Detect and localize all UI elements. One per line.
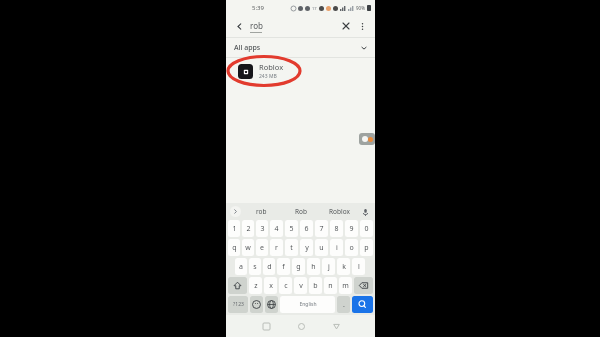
button[interactable]: h bbox=[307, 258, 320, 275]
staticText: c bbox=[284, 281, 288, 291]
button[interactable]: i bbox=[330, 239, 343, 256]
button[interactable]: j bbox=[322, 258, 335, 275]
staticText: rob bbox=[256, 207, 267, 216]
button[interactable]: 5 bbox=[285, 220, 298, 237]
button[interactable]: u bbox=[315, 239, 328, 256]
button[interactable]: y bbox=[300, 239, 313, 256]
button[interactable]: English bbox=[280, 296, 335, 313]
button[interactable]: a bbox=[235, 258, 247, 275]
button[interactable]: d bbox=[263, 258, 275, 275]
button[interactable]: r bbox=[270, 239, 283, 256]
button[interactable]: Emoji bbox=[250, 296, 263, 313]
button[interactable]: e bbox=[256, 239, 268, 256]
staticText: Roblox bbox=[329, 207, 350, 216]
button[interactable]: Voice input bbox=[359, 206, 371, 218]
staticText: f bbox=[282, 262, 285, 272]
button[interactable]: k bbox=[337, 258, 350, 275]
button[interactable]: rob bbox=[247, 15, 338, 37]
staticText: v bbox=[299, 281, 303, 291]
button[interactable]: v bbox=[294, 277, 307, 294]
button[interactable]: Recents bbox=[248, 315, 284, 337]
button[interactable]: m bbox=[339, 277, 352, 294]
button[interactable]: Clear search bbox=[338, 18, 354, 34]
staticText: d bbox=[267, 262, 272, 272]
button[interactable]: 2 bbox=[242, 220, 254, 237]
button[interactable]: ?123 bbox=[228, 296, 248, 313]
staticText: m bbox=[342, 281, 349, 291]
staticText: q bbox=[232, 243, 237, 253]
staticText: y bbox=[305, 243, 309, 253]
staticText: Rob bbox=[295, 207, 307, 216]
button[interactable]: Roblox bbox=[226, 58, 375, 84]
staticText: 4 bbox=[274, 224, 279, 234]
button[interactable]: s bbox=[249, 258, 261, 275]
button[interactable]: b bbox=[309, 277, 322, 294]
staticText: rob bbox=[250, 20, 263, 31]
button[interactable]: Floating overlay bbox=[359, 133, 375, 145]
staticText: 1 bbox=[232, 224, 237, 234]
staticText: . bbox=[343, 300, 345, 310]
staticText: s bbox=[253, 262, 257, 272]
button[interactable]: rob bbox=[241, 203, 281, 220]
staticText: 8 bbox=[334, 224, 339, 234]
button[interactable]: 8 bbox=[330, 220, 343, 237]
button[interactable]: 9 bbox=[345, 220, 358, 237]
button[interactable]: Language bbox=[265, 296, 278, 313]
button[interactable]: n bbox=[324, 277, 337, 294]
staticText: 5 bbox=[289, 224, 294, 234]
button[interactable]: g bbox=[292, 258, 305, 275]
button[interactable]: p bbox=[360, 239, 373, 256]
staticText: b bbox=[313, 281, 318, 291]
staticText: w bbox=[245, 243, 251, 253]
button[interactable]: More options bbox=[354, 18, 370, 34]
staticText: r bbox=[275, 243, 278, 253]
staticText: u bbox=[319, 243, 324, 253]
button[interactable]: q bbox=[228, 239, 240, 256]
button[interactable]: w bbox=[242, 239, 254, 256]
button[interactable]: Back bbox=[319, 315, 354, 337]
button[interactable]: Back bbox=[231, 18, 247, 34]
button[interactable]: . bbox=[337, 296, 350, 313]
button[interactable]: Search bbox=[352, 296, 373, 313]
staticText: All apps bbox=[234, 43, 261, 53]
button[interactable]: x bbox=[264, 277, 277, 294]
button[interactable]: Roblox bbox=[320, 203, 359, 220]
staticText: 17 bbox=[312, 6, 317, 11]
button[interactable]: 1 bbox=[228, 220, 240, 237]
staticText: Roblox bbox=[259, 62, 284, 72]
button[interactable]: f bbox=[277, 258, 290, 275]
button[interactable]: t bbox=[285, 239, 298, 256]
button[interactable]: l bbox=[352, 258, 365, 275]
staticText: 243 MB bbox=[259, 73, 277, 80]
button[interactable]: 7 bbox=[315, 220, 328, 237]
button[interactable]: z bbox=[249, 277, 262, 294]
button[interactable]: o bbox=[345, 239, 358, 256]
staticText: x bbox=[269, 281, 273, 291]
staticText: e bbox=[260, 243, 264, 253]
staticText: g bbox=[296, 262, 301, 272]
button[interactable]: Rob bbox=[281, 203, 320, 220]
button[interactable]: All apps bbox=[226, 38, 375, 57]
staticText: k bbox=[342, 262, 346, 272]
button[interactable]: 6 bbox=[300, 220, 313, 237]
staticText: l bbox=[358, 262, 360, 272]
button[interactable]: Shift bbox=[228, 277, 247, 294]
staticText: t bbox=[290, 243, 293, 253]
staticText: 90% bbox=[356, 5, 365, 11]
staticText: p bbox=[364, 243, 369, 253]
button[interactable]: Home bbox=[284, 315, 319, 337]
staticText: 3 bbox=[260, 224, 265, 234]
button[interactable]: 4 bbox=[270, 220, 283, 237]
button[interactable]: Expand suggestions bbox=[230, 206, 241, 217]
button[interactable]: 0 bbox=[360, 220, 373, 237]
staticText: z bbox=[254, 281, 258, 291]
staticText: n bbox=[328, 281, 333, 291]
staticText: 5:39 bbox=[252, 4, 264, 12]
staticText: 2 bbox=[246, 224, 251, 234]
button[interactable]: c bbox=[279, 277, 292, 294]
button[interactable]: 3 bbox=[256, 220, 268, 237]
staticText: ?123 bbox=[233, 301, 244, 308]
button[interactable]: Backspace bbox=[354, 277, 373, 294]
staticText: 0 bbox=[364, 224, 369, 234]
staticText: 7 bbox=[319, 224, 324, 234]
